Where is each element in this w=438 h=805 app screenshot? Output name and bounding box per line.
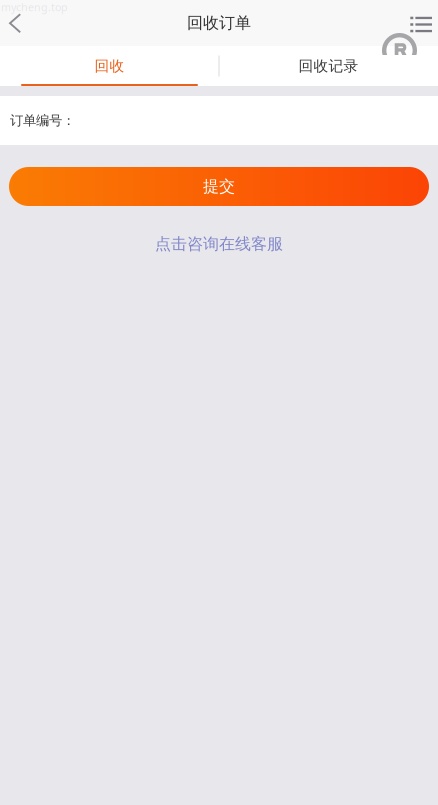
staticText: 回收记录 xyxy=(298,57,358,75)
staticText: 回收订单 xyxy=(187,13,251,33)
button[interactable]: 点击咨询在线客服 xyxy=(155,233,283,255)
staticText: 订单编号： xyxy=(10,112,75,129)
button[interactable]: 回收 xyxy=(0,46,219,86)
staticText: 提交 xyxy=(203,177,235,196)
staticText: mycheng.top xyxy=(1,0,68,14)
button[interactable]: More xyxy=(394,0,438,46)
button[interactable]: 回收记录 xyxy=(219,46,438,86)
staticText: 点击咨询在线客服 xyxy=(155,234,283,254)
staticText: 回收 xyxy=(94,57,124,75)
button[interactable]: Back xyxy=(0,0,42,46)
button[interactable]: 提交 xyxy=(9,167,429,206)
